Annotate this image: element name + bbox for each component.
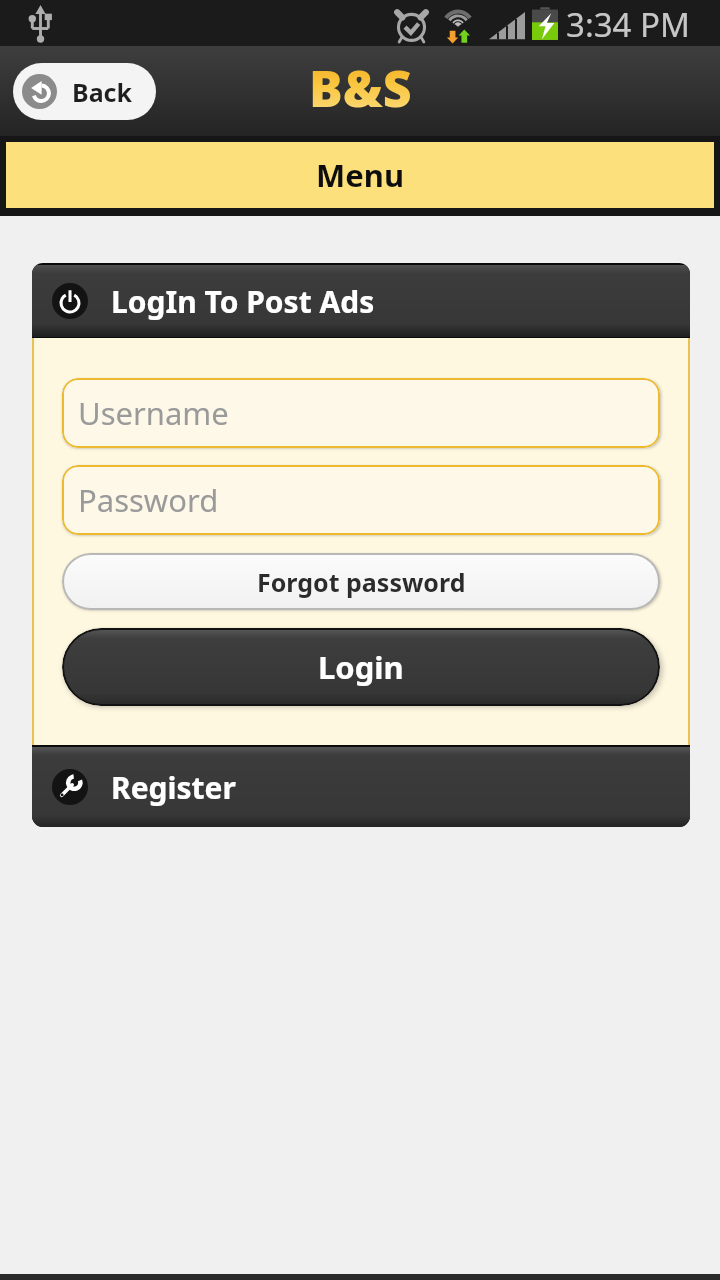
button[interactable]: Back (13, 63, 156, 120)
button[interactable]: Password (62, 465, 660, 535)
other: Mobile signal (489, 8, 525, 42)
other: Wi-Fi connected (443, 4, 473, 44)
staticText: Login (318, 646, 404, 688)
button[interactable]: Menu (6, 142, 714, 208)
staticText: Forgot password (257, 565, 466, 599)
button[interactable]: LogIn To Post Ads (32, 263, 690, 338)
staticText: Register (111, 767, 236, 808)
staticText: 3:34 PM (566, 2, 690, 47)
button[interactable]: Username (62, 378, 660, 448)
button[interactable]: Login (64, 630, 658, 704)
button[interactable]: Register (32, 745, 690, 827)
button[interactable]: Forgot password (64, 555, 658, 608)
staticText: Password (78, 479, 219, 521)
staticText: Back (72, 75, 133, 109)
staticText: Menu (316, 154, 405, 196)
staticText: LogIn To Post Ads (111, 281, 375, 322)
staticText: B&S (309, 54, 412, 122)
other: Alarm set (396, 7, 427, 44)
other: Battery charging (532, 5, 558, 43)
staticText: Username (78, 392, 229, 434)
